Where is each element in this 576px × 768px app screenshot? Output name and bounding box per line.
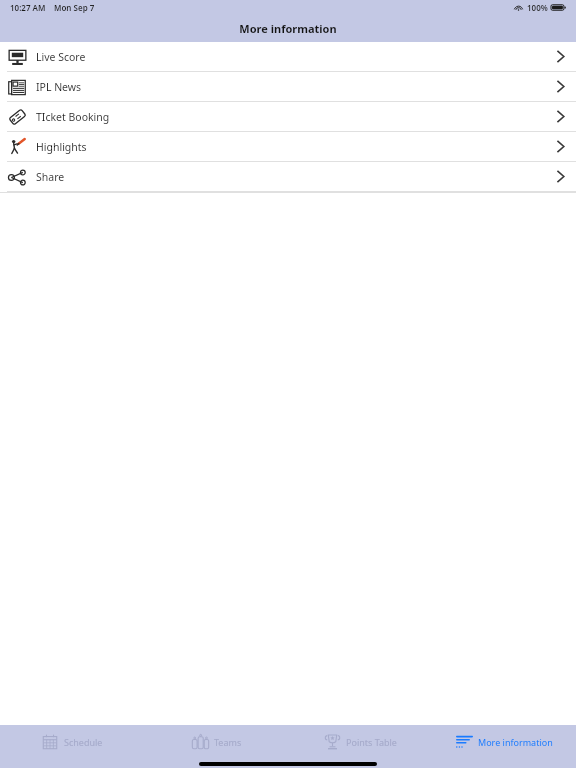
button[interactable]: Schedule [0,725,144,759]
staticText: Share [36,170,65,184]
button[interactable]: Live Score [0,42,576,72]
staticText: Live Score [36,50,86,64]
staticText: More information [478,736,553,748]
button[interactable]: Points Table [288,725,432,759]
button[interactable]: Highlights [0,132,576,162]
staticText: Schedule [64,736,103,748]
staticText: 10:27 AM [10,2,46,13]
button[interactable]: Share [0,162,576,192]
staticText: 100% [527,2,548,13]
button[interactable]: IPL News [0,72,576,102]
staticText: Highlights [36,140,87,154]
button[interactable]: Teams [144,725,288,759]
staticText: TIcket Booking [36,110,110,124]
button[interactable]: TIcket Booking [0,102,576,132]
button[interactable]: More information [432,725,576,759]
staticText: Teams [214,736,242,748]
staticText: More information [239,21,337,36]
staticText: Mon Sep 7 [54,2,95,13]
staticText: Points Table [346,736,397,748]
staticText: IPL News [36,80,82,94]
